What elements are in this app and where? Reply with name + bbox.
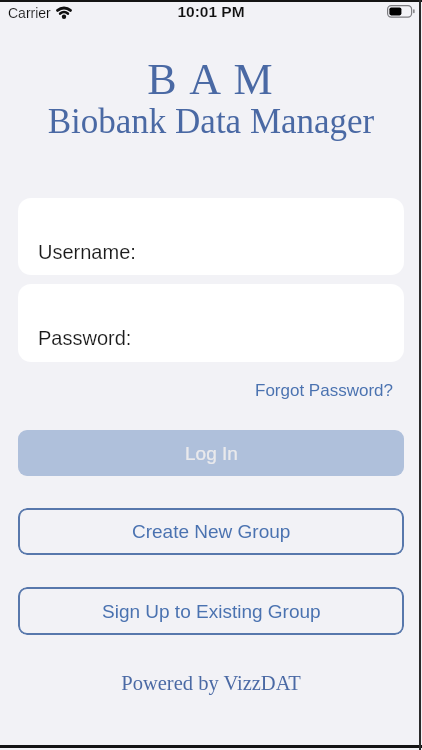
staticText: Biobank Data Manager [0, 102, 422, 141]
staticText: Log In [185, 443, 238, 464]
staticText: Username: [38, 241, 136, 263]
button[interactable]: Create New Group [18, 508, 404, 555]
button[interactable]: Forgot Password? [255, 381, 393, 400]
button[interactable]: Username: [18, 198, 404, 275]
staticText: Carrier [8, 5, 51, 21]
staticText: Sign Up to Existing Group [102, 601, 321, 622]
staticText: Create New Group [132, 521, 291, 542]
staticText: B A M [0, 55, 422, 104]
button[interactable]: Password: [18, 284, 404, 362]
staticText: Powered by VizzDAT [0, 672, 422, 695]
staticText: 10:01 PM [0, 3, 422, 20]
button[interactable]: Sign Up to Existing Group [18, 587, 404, 635]
staticText: Password: [38, 327, 132, 349]
button[interactable]: Log In [18, 430, 404, 476]
